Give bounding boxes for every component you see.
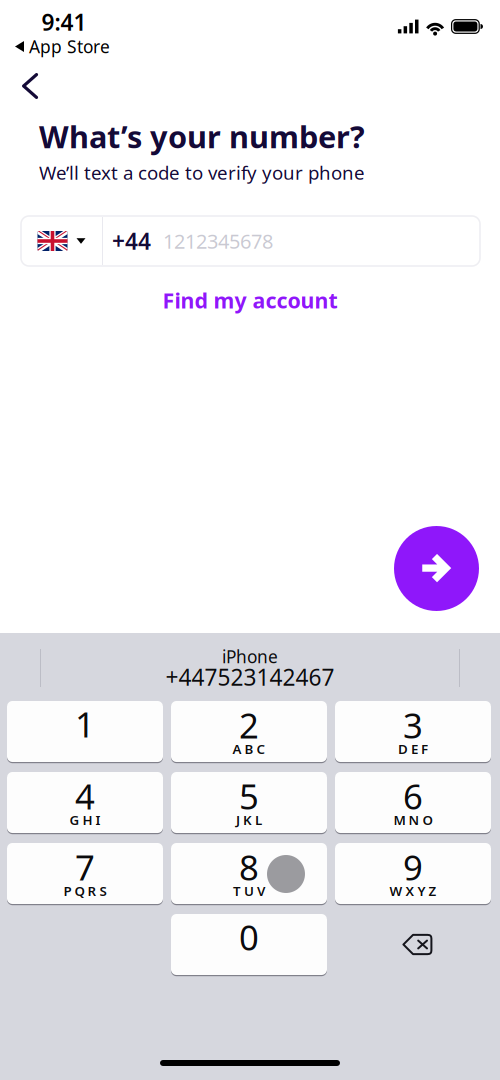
staticText: 6 — [403, 773, 423, 819]
staticText: 9:41 — [41, 7, 86, 37]
staticText: T U V — [233, 882, 265, 900]
staticText: 3 — [403, 702, 423, 748]
staticText: What’s your number? — [39, 116, 365, 157]
staticText: D E F — [398, 740, 428, 758]
button[interactable]: Select country code — [21, 217, 102, 265]
button[interactable]: App Store — [0, 31, 122, 62]
button[interactable]: 9 — [335, 843, 491, 904]
staticText: We’ll text a code to verify your phone — [39, 160, 365, 185]
button[interactable]: 4 — [7, 772, 163, 833]
staticText: P Q R S — [63, 882, 106, 900]
button[interactable]: Back — [0, 63, 60, 109]
button[interactable]: 3 — [335, 701, 491, 762]
staticText: 8 — [239, 844, 259, 890]
staticText: 5 — [239, 773, 259, 819]
staticText: 1212345678 — [163, 228, 273, 254]
staticText: 4 — [75, 773, 95, 819]
staticText: W X Y Z — [389, 882, 436, 900]
button[interactable]: 1 — [7, 701, 163, 762]
staticText: Find my account — [162, 286, 337, 314]
staticText: 0 — [239, 914, 259, 960]
staticText: 2 — [239, 702, 259, 748]
staticText: J K L — [236, 811, 262, 829]
button[interactable]: Continue — [394, 526, 479, 611]
button[interactable]: 5 — [171, 772, 327, 833]
staticText: A B C — [232, 740, 265, 758]
button[interactable]: 2 — [171, 701, 327, 762]
staticText: +447523142467 — [165, 662, 334, 692]
button[interactable]: Delete — [335, 914, 491, 975]
staticText: M N O — [393, 811, 432, 829]
staticText: 1 — [75, 701, 95, 747]
staticText: App Store — [29, 35, 110, 58]
button[interactable]: 8 — [171, 843, 327, 904]
button[interactable]: 7 — [7, 843, 163, 904]
staticText: 7 — [75, 844, 95, 890]
button[interactable]: 6 — [335, 772, 491, 833]
staticText: +44 — [112, 226, 151, 256]
button[interactable]: 0 — [171, 914, 327, 975]
staticText: 9 — [403, 844, 423, 890]
staticText: G H I — [69, 811, 100, 829]
staticText: iPhone — [222, 645, 278, 668]
button[interactable]: Find my account — [146, 279, 353, 321]
